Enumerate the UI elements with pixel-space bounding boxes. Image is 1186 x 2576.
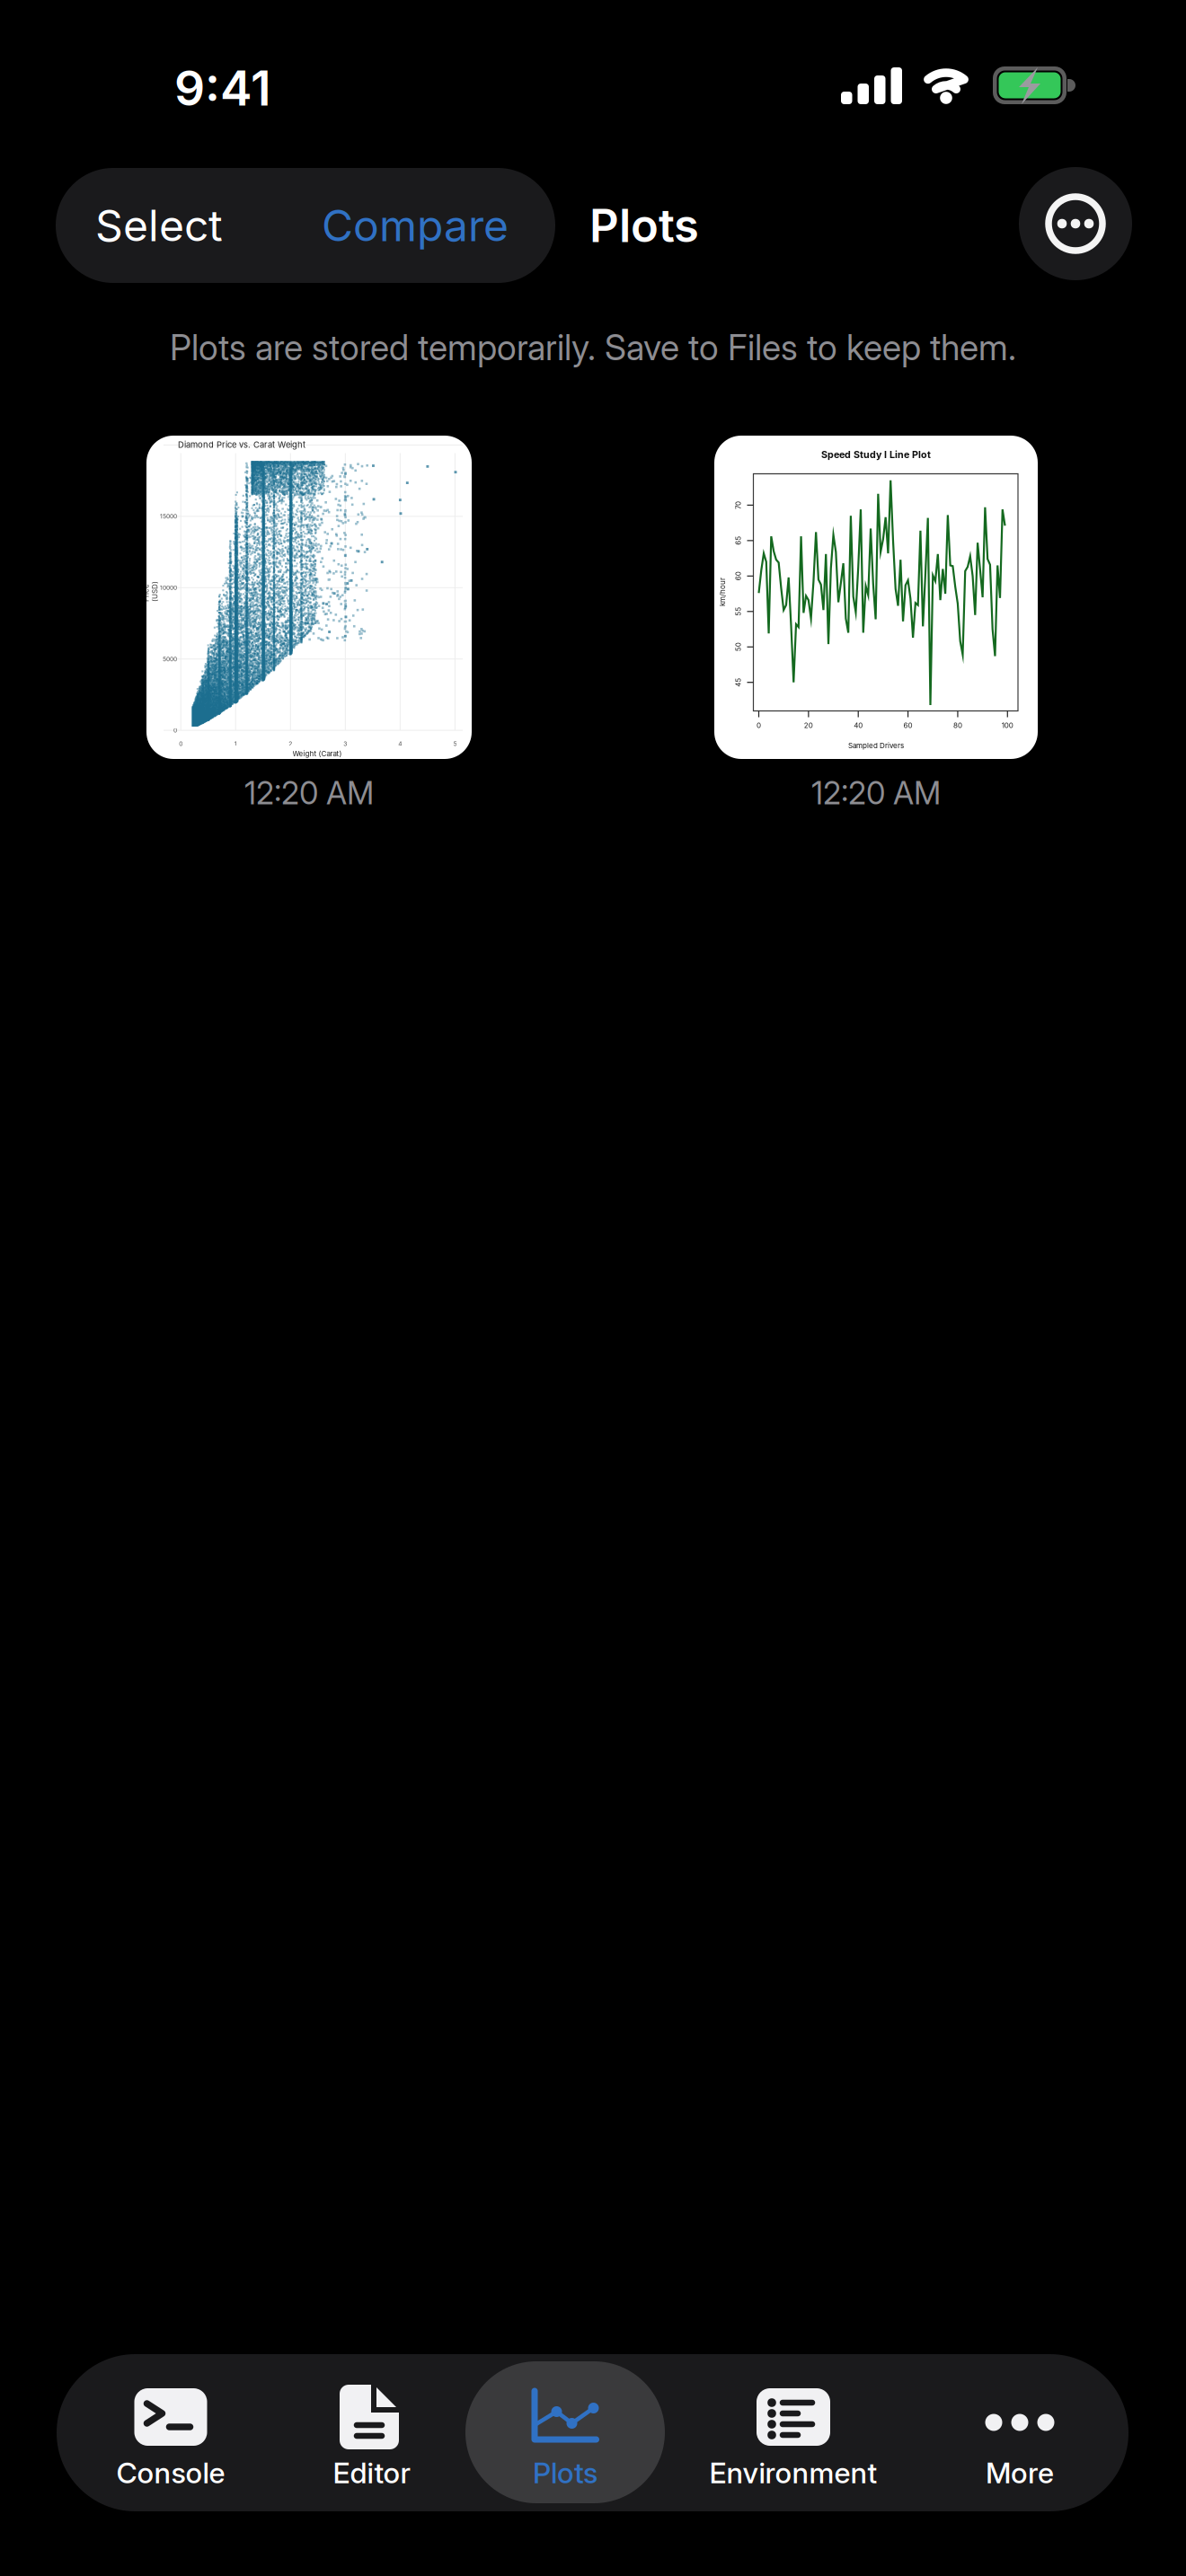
- staticText: 5: [453, 740, 457, 747]
- button[interactable]: More: [921, 2354, 1119, 2511]
- staticText: 50: [734, 643, 743, 651]
- staticText: 0: [173, 727, 177, 734]
- staticText: More: [986, 2455, 1054, 2490]
- staticText: 9:41: [174, 59, 271, 117]
- staticText: 4: [398, 740, 402, 747]
- staticText: Diamond Price vs. Carat Weight: [178, 440, 305, 450]
- staticText: 70: [734, 501, 742, 510]
- staticText: 80: [953, 721, 962, 730]
- staticText: Plots are stored temporarily. Save to Fi…: [170, 327, 1016, 369]
- staticText: 1: [234, 740, 237, 747]
- button[interactable]: Console: [72, 2354, 270, 2511]
- staticText: Console: [116, 2455, 225, 2490]
- button[interactable]: Speed Study I Line Plot: [714, 436, 1038, 759]
- staticText: Sampled Drivers: [848, 741, 904, 750]
- staticText: km/hour: [708, 588, 737, 596]
- staticText: 12:20 AM: [244, 774, 374, 812]
- staticText: 5000: [163, 655, 177, 663]
- staticText: Speed Study I Line Plot: [821, 449, 931, 460]
- staticText: 20: [804, 721, 813, 730]
- staticText: 60: [734, 572, 743, 580]
- staticText: 12:20 AM: [811, 774, 941, 812]
- staticText: 45: [734, 678, 743, 687]
- button[interactable]: Compare: [280, 168, 550, 283]
- staticText: Editor: [333, 2455, 411, 2490]
- staticText: 100: [1002, 721, 1013, 730]
- staticText: 65: [734, 536, 743, 545]
- staticText: 0: [179, 740, 183, 747]
- staticText: 10000: [160, 584, 177, 591]
- staticText: 40: [854, 721, 863, 730]
- staticText: Select: [95, 199, 223, 252]
- button[interactable]: Environment: [695, 2354, 892, 2511]
- button[interactable]: Editor: [273, 2354, 471, 2511]
- staticText: Weight (Carat): [292, 749, 342, 758]
- staticText: 55: [734, 607, 743, 616]
- staticText: Plots: [533, 2455, 597, 2490]
- button[interactable]: Select: [56, 168, 262, 283]
- staticText: 2: [289, 740, 292, 747]
- staticText: Price (USD): [140, 583, 161, 600]
- button[interactable]: More options: [1019, 167, 1132, 280]
- staticText: Compare: [322, 199, 509, 252]
- staticText: Plots: [589, 198, 699, 253]
- staticText: 15000: [160, 513, 177, 520]
- button[interactable]: Plots: [466, 2354, 664, 2511]
- staticText: 0: [757, 721, 761, 730]
- staticText: 60: [904, 721, 913, 730]
- button[interactable]: Diamond Price vs. Carat Weight: [146, 436, 472, 759]
- staticText: Environment: [709, 2455, 877, 2490]
- staticText: 3: [343, 740, 347, 747]
